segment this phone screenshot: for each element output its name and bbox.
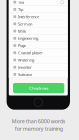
button[interactable]: Sermon [9,20,68,27]
staticText: Pugs [18,43,26,48]
staticText: More than 6000 words [12,118,66,125]
staticText: for memory training [15,125,63,132]
staticText: Check me [29,85,48,91]
staticText: Tea [18,0,24,5]
staticText: Watering [18,57,34,63]
button[interactable]: Coastal player [9,49,68,56]
button[interactable]: Engineering [9,35,68,42]
staticText: Interference [18,14,39,19]
staticText: Sermon [18,21,32,26]
button[interactable]: Inventor [9,64,68,71]
staticText: Milk [18,28,26,34]
button[interactable]: Interference [9,13,68,20]
staticText: Suitcase [18,72,32,77]
button[interactable]: Watering [9,56,68,64]
staticText: Tip [18,7,23,12]
staticText: Coastal player [18,50,43,55]
button[interactable]: Pugs [9,42,68,49]
staticText: Engineering [18,36,38,41]
button[interactable]: Check me [13,83,64,93]
button[interactable]: Tea [9,0,68,6]
button[interactable]: Suitcase [9,71,68,78]
button[interactable]: Milk [9,27,68,35]
staticText: Inventor [18,64,32,70]
button[interactable]: Tip [9,6,68,13]
